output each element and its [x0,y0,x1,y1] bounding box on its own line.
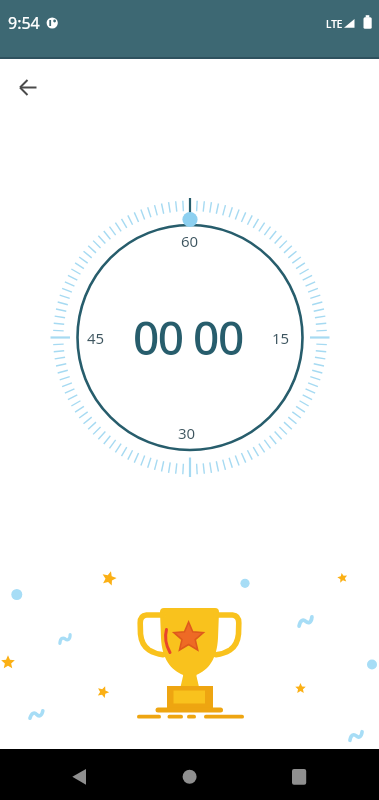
staticText: 00 00 [133,306,243,369]
staticText: 30 [178,423,196,443]
button[interactable] [253,749,379,800]
staticText: LTE [326,17,343,31]
staticText: 45 [87,328,105,348]
button[interactable] [7,67,48,108]
button[interactable] [0,749,127,800]
staticText: 60 [181,231,199,251]
button[interactable] [127,749,253,800]
staticText: 15 [272,328,290,348]
staticText: 9:54 [8,12,40,34]
